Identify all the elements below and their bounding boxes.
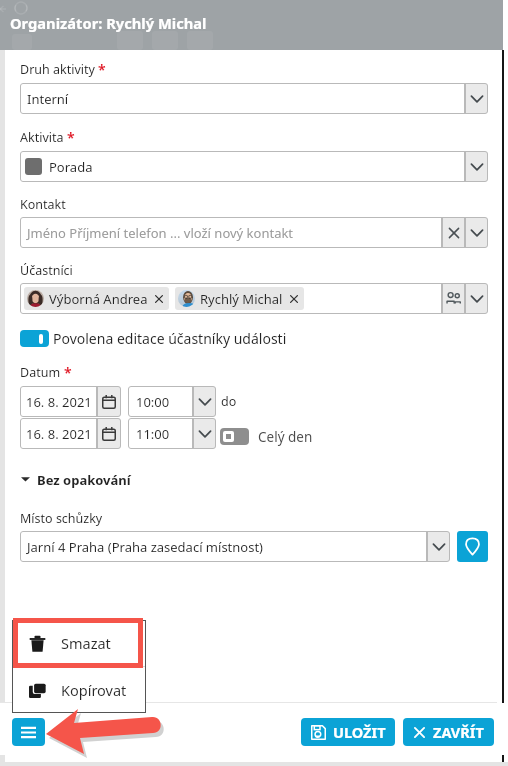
staticText: Povolena editace účastníky události	[53, 329, 287, 348]
staticText: 16. 8. 2021	[26, 393, 92, 411]
button[interactable]: Smazat	[12, 620, 146, 666]
button[interactable]: Toggle	[220, 428, 249, 445]
staticText: 16. 8. 2021	[26, 425, 92, 443]
button[interactable]: Open dropdown	[193, 386, 216, 417]
button[interactable]: Pick date	[97, 418, 121, 449]
button[interactable]: Rychlý Michal	[178, 287, 299, 310]
button[interactable]: Open dropdown	[465, 283, 488, 314]
button[interactable]: Select participants	[442, 283, 465, 314]
staticText: Výborná Andrea	[49, 290, 148, 308]
button[interactable]: Menu	[12, 718, 45, 746]
staticText: *	[64, 363, 72, 382]
staticText: ZAVŘÍT	[433, 722, 484, 742]
staticText: Účastníci	[20, 262, 73, 279]
button[interactable]: Show on map	[457, 531, 488, 562]
button[interactable]: Clear	[442, 217, 465, 248]
staticText: Celý den	[258, 428, 313, 446]
staticText: Interní	[27, 90, 69, 108]
button[interactable]: 16. 8. 2021	[26, 418, 97, 449]
button[interactable]: Pick date	[97, 386, 121, 417]
button[interactable]: Jméno Příjmení telefon ... vloží nový ko…	[27, 217, 442, 248]
button[interactable]: Kopírovat	[12, 667, 146, 713]
button[interactable]: Open dropdown	[427, 531, 450, 562]
staticText: Aktivita	[20, 129, 64, 146]
button[interactable]: Porada	[25, 151, 465, 182]
button[interactable]: Interní	[27, 83, 465, 114]
staticText: Organizátor: Rychlý Michal	[10, 13, 207, 33]
button[interactable]: Výborná Andrea	[24, 283, 442, 314]
staticText: Jméno Příjmení telefon ... vloží nový ko…	[27, 224, 294, 242]
staticText: Bez opakování	[37, 471, 131, 489]
button[interactable]: Výborná Andrea	[27, 287, 164, 310]
staticText: *	[67, 128, 75, 147]
staticText: 10:00	[136, 393, 170, 411]
staticText: ULOŽIT	[333, 722, 386, 742]
staticText: do	[221, 393, 237, 410]
staticText: Místo schůzky	[20, 510, 103, 527]
staticText: Druh aktivity	[20, 61, 95, 78]
button[interactable]: 10:00	[136, 386, 193, 417]
button[interactable]: Jarní 4 Praha (Praha zasedací místnost)	[27, 531, 427, 562]
staticText: Rychlý Michal	[200, 290, 283, 308]
staticText: *	[98, 60, 106, 79]
button[interactable]: Toggle	[20, 330, 49, 347]
staticText: Kontakt	[20, 196, 66, 213]
staticText: Kopírovat	[61, 680, 127, 700]
button[interactable]: 11:00	[136, 418, 193, 449]
button[interactable]: Open dropdown	[465, 151, 488, 182]
button[interactable]: Bez opakování	[20, 471, 131, 489]
button[interactable]: Open dropdown	[193, 418, 216, 449]
button[interactable]: 16. 8. 2021	[26, 386, 97, 417]
button[interactable]: Open dropdown	[465, 83, 488, 114]
staticText: Jarní 4 Praha (Praha zasedací místnost)	[27, 538, 264, 556]
staticText: Datum	[20, 364, 61, 381]
button[interactable]: ZAVŘÍT	[403, 718, 494, 746]
button[interactable]: Toggle	[20, 329, 287, 348]
staticText: Smazat	[61, 633, 111, 653]
staticText: 11:00	[136, 425, 170, 443]
button[interactable]: Open dropdown	[465, 217, 488, 248]
button[interactable]: ULOŽIT	[301, 718, 395, 746]
staticText: Porada	[49, 158, 93, 176]
